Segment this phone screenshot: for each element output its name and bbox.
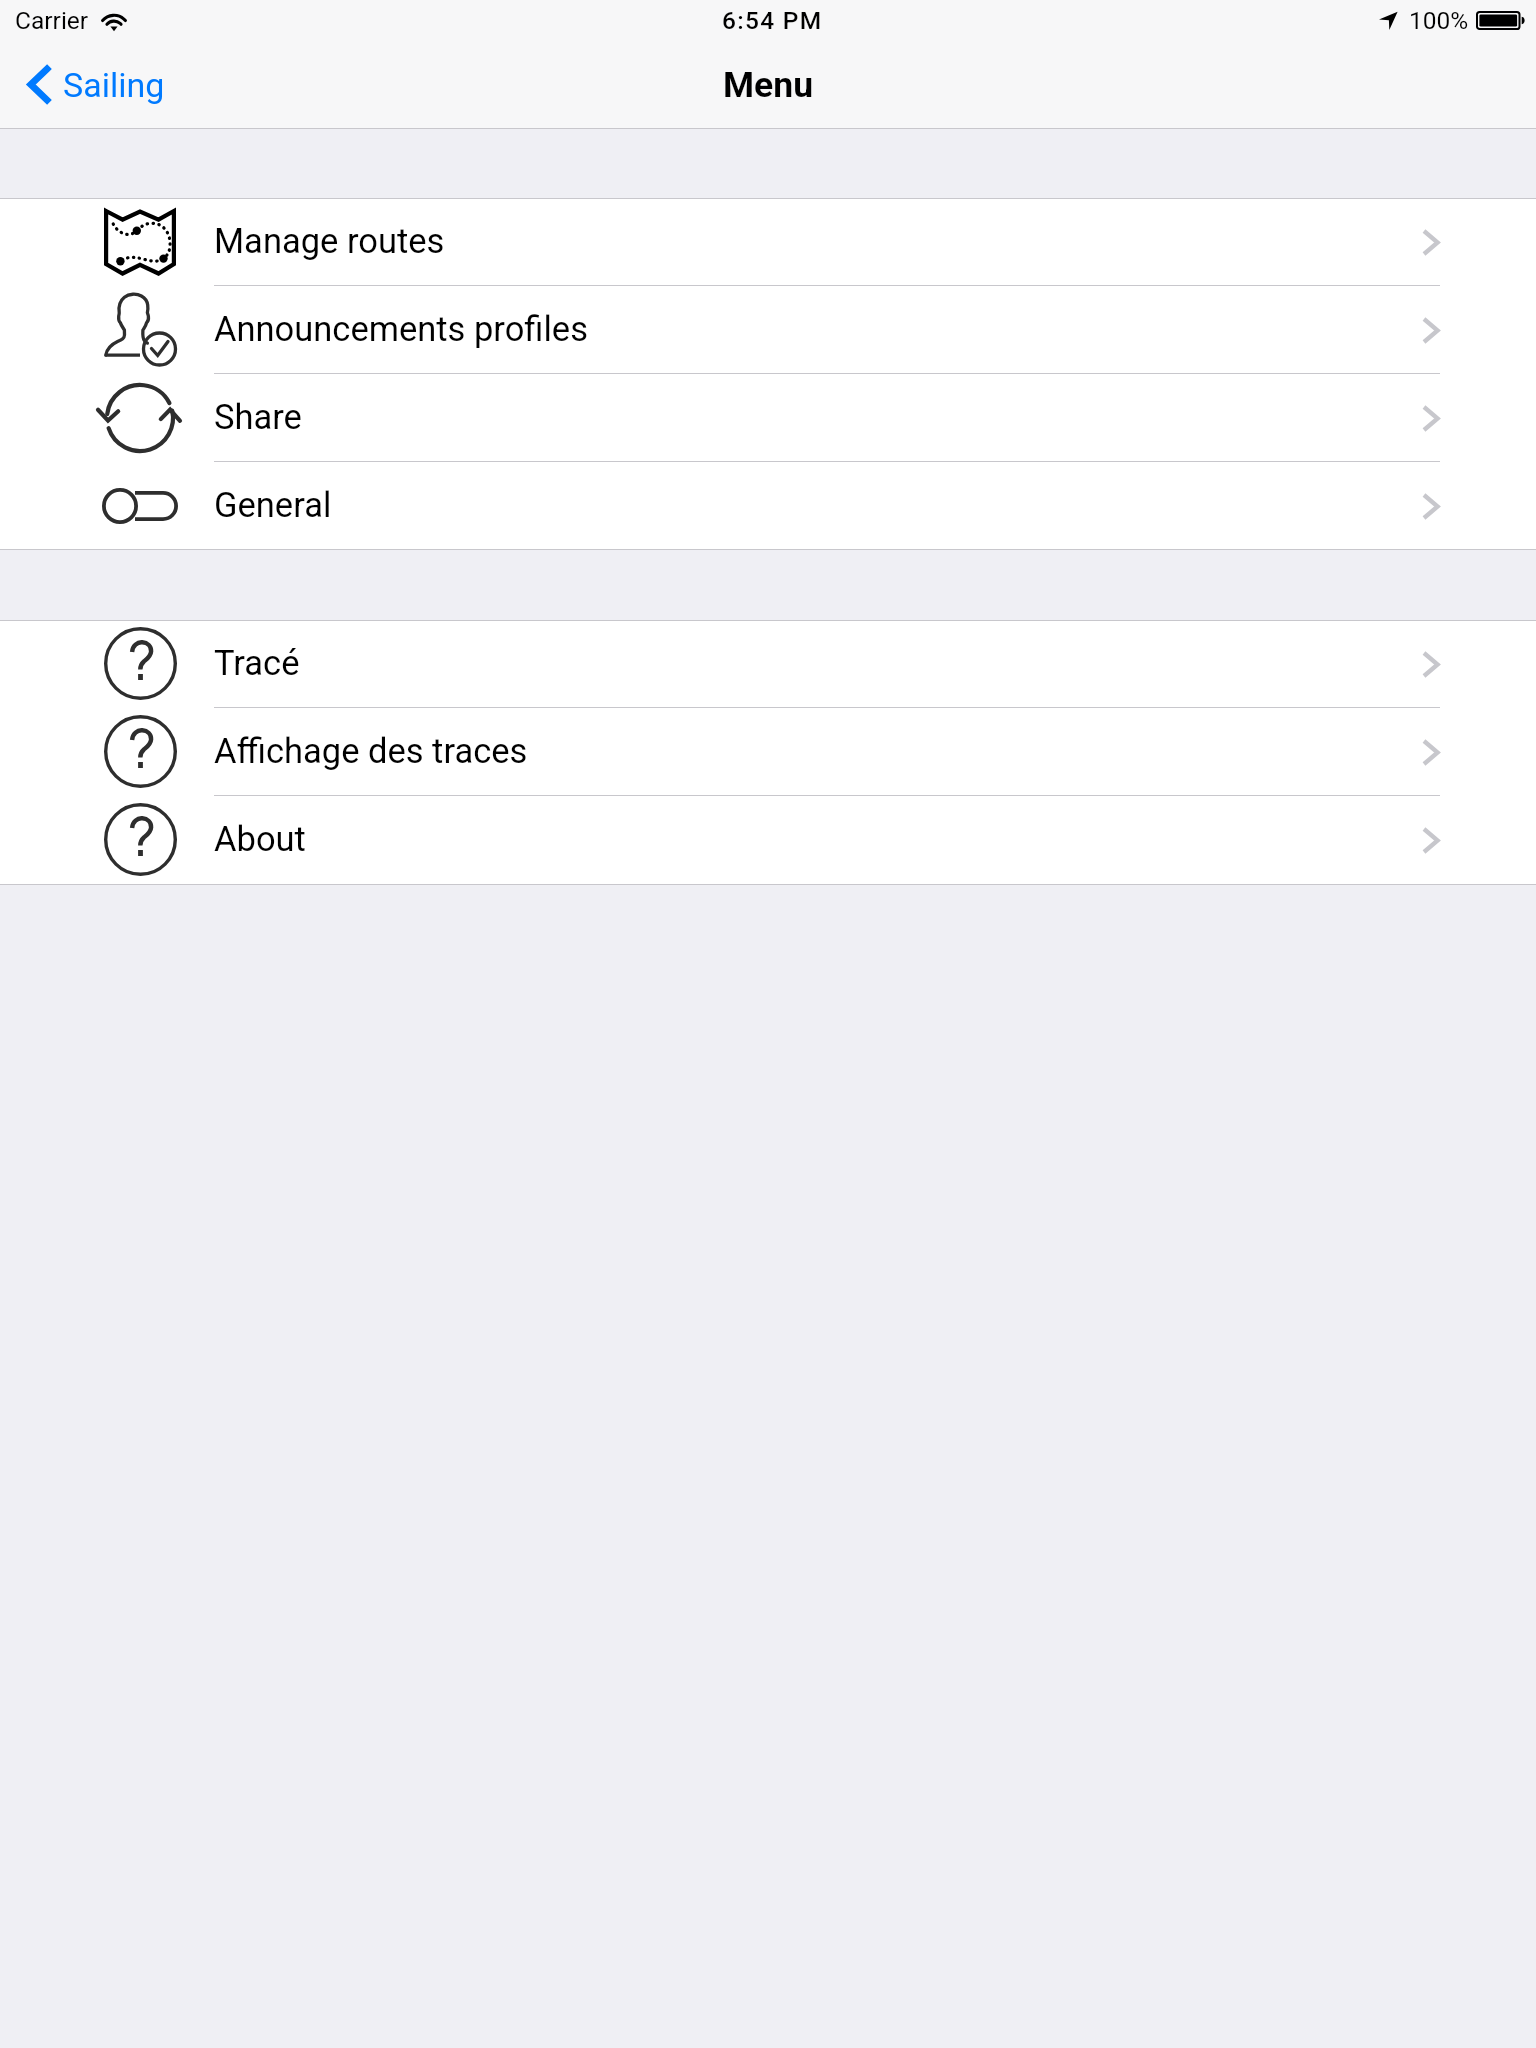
button[interactable]: Manage routes — [0, 198, 1536, 286]
staticText: 100% — [1409, 6, 1469, 35]
other: Battery full — [1476, 11, 1526, 30]
button[interactable]: General — [0, 462, 1536, 550]
other: Location services active — [1379, 11, 1398, 30]
staticText: About — [214, 819, 306, 859]
staticText: Carrier — [15, 6, 89, 35]
staticText: General — [214, 485, 332, 525]
button[interactable]: About — [0, 796, 1536, 884]
staticText: 6:54 PM — [722, 6, 823, 35]
staticText: Tracé — [214, 643, 300, 683]
staticText: Sailing — [63, 65, 165, 105]
button[interactable]: Announcements profiles — [0, 286, 1536, 374]
other: Back to Sailing — [26, 63, 52, 106]
button[interactable]: Share — [0, 374, 1536, 462]
staticText: Share — [214, 397, 302, 437]
staticText: Manage routes — [214, 221, 445, 261]
staticText: Affichage des traces — [214, 731, 528, 771]
button[interactable]: Affichage des traces — [0, 708, 1536, 796]
button[interactable]: Back to Sailing — [0, 55, 181, 114]
button[interactable]: Tracé — [0, 620, 1536, 708]
staticText: Menu — [723, 64, 814, 106]
other: Wi-Fi signal — [102, 13, 126, 31]
staticText: Announcements profiles — [214, 309, 588, 349]
